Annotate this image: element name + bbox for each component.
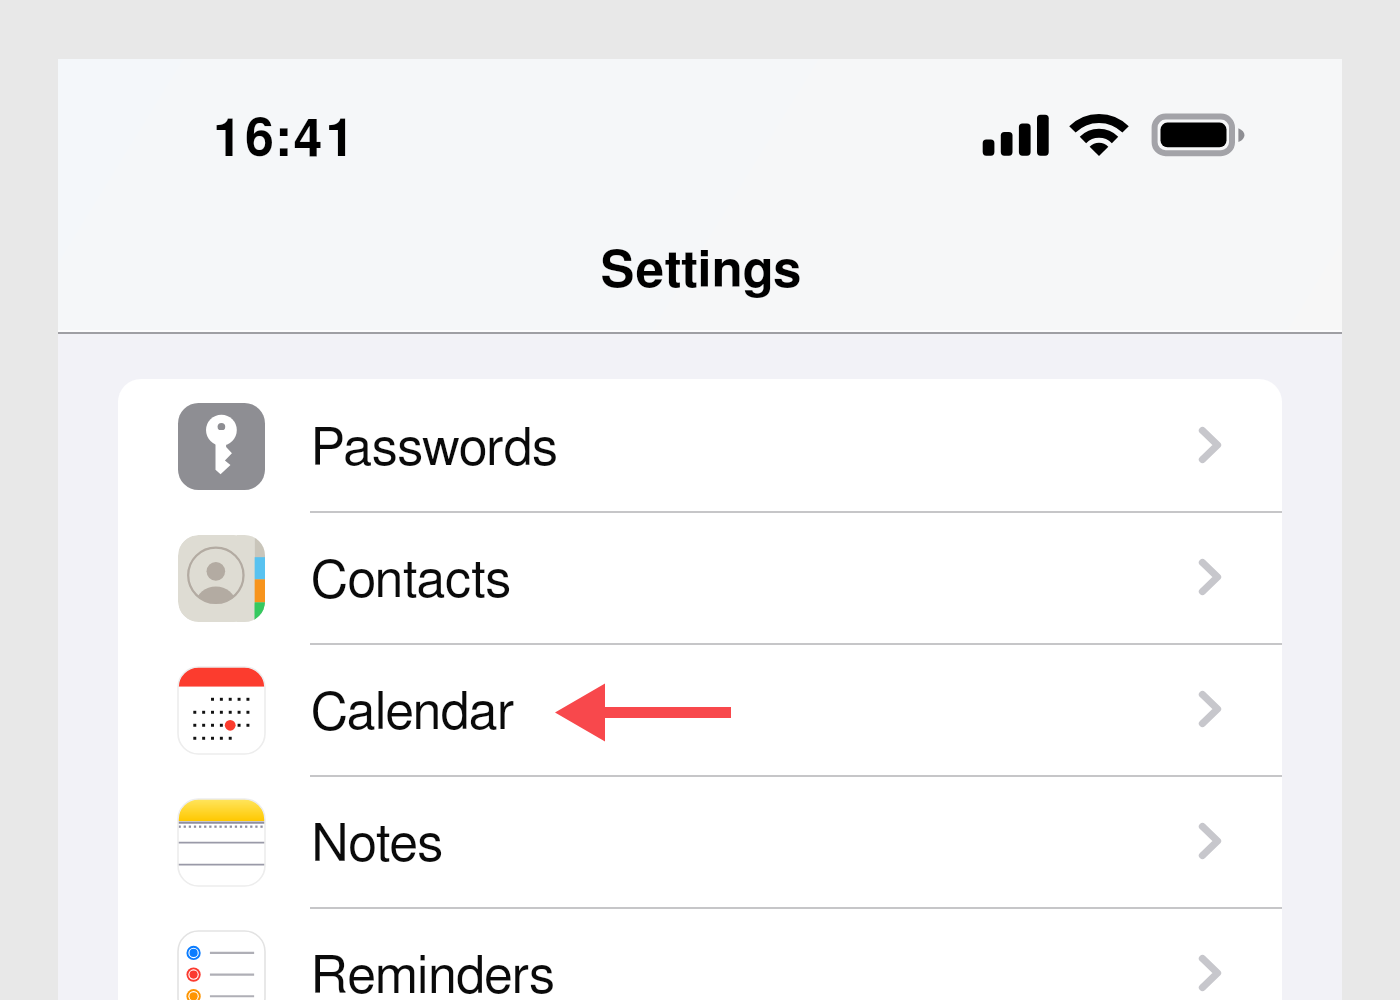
other: Contacts icon xyxy=(178,535,265,622)
other: Passwords icon xyxy=(178,403,265,490)
staticText: Passwords xyxy=(311,423,558,475)
other: Open Passwords xyxy=(1199,427,1221,463)
staticText: Settings xyxy=(600,246,802,297)
button[interactable]: Contacts icon xyxy=(118,511,1282,643)
other: Open Contacts xyxy=(1199,559,1221,595)
staticText: Calendar xyxy=(311,687,515,739)
staticText: 16:41 xyxy=(213,114,358,166)
staticText: Reminders xyxy=(311,951,555,1000)
staticText: Contacts xyxy=(311,555,511,607)
other: Open Reminders xyxy=(1199,955,1221,991)
other: Reminders icon xyxy=(178,931,265,1000)
button[interactable]: Reminders icon xyxy=(118,907,1282,1000)
other: Open Calendar xyxy=(1199,691,1221,727)
other: Open Notes xyxy=(1199,823,1221,859)
button[interactable]: Passwords icon xyxy=(118,379,1282,511)
other: Notes icon xyxy=(178,799,265,886)
staticText: Notes xyxy=(311,819,443,871)
other: Calendar icon xyxy=(178,667,265,754)
other: Cellular signal, Wi-Fi, battery full xyxy=(958,99,1328,179)
button[interactable]: Calendar icon xyxy=(118,643,1282,775)
button[interactable]: Notes icon xyxy=(118,775,1282,907)
